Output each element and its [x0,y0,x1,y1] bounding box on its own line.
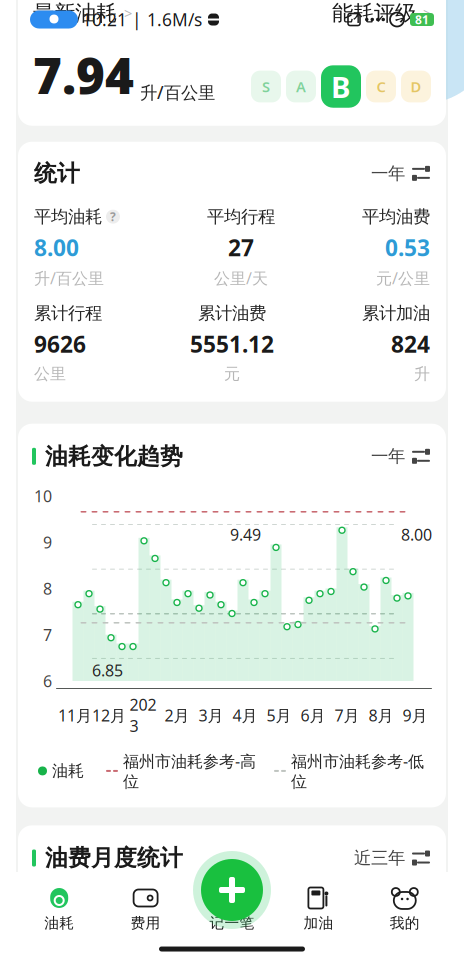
staticText: 累计行程 [34,303,102,324]
staticText: 累计加油 [362,303,430,324]
button[interactable]: 一年 [369,442,432,471]
staticText: 8.00 [34,232,79,262]
button[interactable]: 一年 [371,159,430,188]
staticText: 记一笔 [209,914,254,932]
staticText: 9 [43,532,52,553]
staticText: C [376,77,385,96]
staticText: > [423,3,431,23]
staticText: 8.00 [401,524,432,545]
staticText: ? [110,209,116,225]
staticText: 8 [43,578,52,599]
staticText: 12月 [92,705,126,726]
staticText: 8月 [368,705,393,726]
button[interactable]: 我的 [362,880,448,936]
staticText: 油费月度统计 [45,844,183,872]
staticText: 0.53 [385,232,430,262]
staticText: 3月 [198,705,223,726]
staticText: 11月 [58,705,92,726]
staticText: 824 [391,329,430,359]
staticText: 最新油耗 [33,0,117,26]
staticText: 能耗评级 [332,0,416,26]
staticText: > [124,3,132,23]
staticText: 平均行程 [207,206,275,227]
staticText: 福州市油耗参考-高位 [123,750,256,791]
staticText: 统计 [34,159,80,187]
staticText: 10 [34,485,52,507]
staticText: 4月 [232,705,257,726]
staticText: 升/百公里 [140,81,215,104]
staticText: 油耗变化趋势 [45,442,183,470]
staticText: 2月 [164,705,189,726]
staticText: 5月 [266,705,291,726]
staticText: 7 [43,624,52,645]
staticText: 油耗 [44,914,74,932]
staticText: 公里 [34,364,66,384]
button[interactable]: 油耗 [16,880,102,936]
staticText: 9月 [402,705,427,726]
staticText: 费用 [131,914,161,932]
staticText: 元 [224,364,240,384]
staticText: 27 [228,232,254,262]
staticText: 7.94 [33,42,134,108]
staticText: 升/百公里 [34,267,104,289]
staticText: 累计油费 [198,303,266,324]
button[interactable]: 最新油耗 [33,0,132,26]
staticText: 9626 [34,329,86,359]
staticText: D [410,77,421,96]
staticText: 一年 [371,163,405,184]
staticText: 元/公里 [376,267,430,289]
staticText: S [262,77,270,96]
staticText: 加油 [303,914,333,932]
staticText: 2023 [129,694,156,736]
staticText: 81 [415,11,429,27]
staticText: 5551.12 [190,329,274,359]
button[interactable]: 能耗评级 [332,0,431,26]
staticText: 6.85 [92,660,123,681]
button[interactable]: 费用 [102,880,189,936]
staticText: 公里/天 [214,267,268,289]
staticText: 平均油费 [362,206,430,227]
staticText: A [296,77,306,96]
staticText: 一年 [371,446,405,467]
staticText: 平均油耗 [34,206,102,227]
button[interactable]: 加油 [275,880,362,936]
staticText: 油耗 [52,761,84,781]
button[interactable]: 近三年 [352,843,432,873]
button[interactable]: 记一笔 [189,880,275,936]
button[interactable]: 记一笔 [193,851,271,929]
staticText: B [331,67,351,106]
staticText: 福州市油耗参考-低位 [291,750,424,791]
staticText: 我的 [390,914,420,932]
staticText: 6 [43,670,52,692]
staticText: 6月 [300,705,325,726]
staticText: 1650 [214,887,250,908]
staticText: 近三年 [354,847,405,869]
staticText: 10:21 | 1.6M/s [82,8,202,31]
staticText: 9.49 [230,524,261,545]
staticText: 升 [414,364,430,384]
staticText: 7月 [334,705,359,726]
